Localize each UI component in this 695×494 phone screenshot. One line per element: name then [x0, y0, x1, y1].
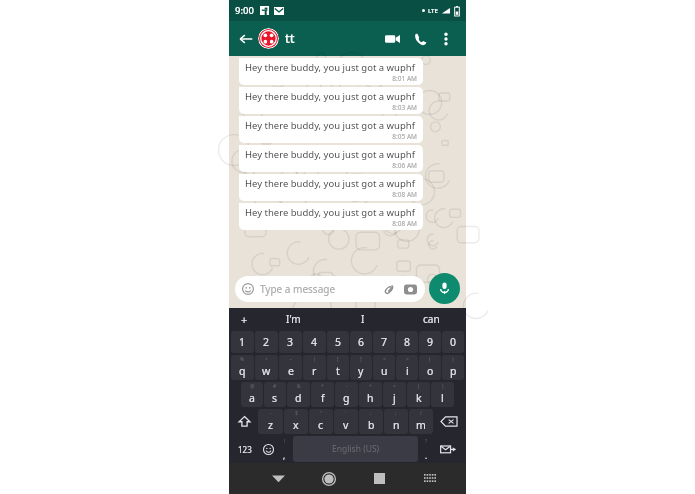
- button[interactable]: @: [241, 382, 263, 407]
- button[interactable]: Switch keyboard: [405, 463, 456, 494]
- button[interactable]: /: [409, 409, 433, 434]
- button[interactable]: Type a message: [235, 276, 425, 302]
- button[interactable]: 3: [279, 331, 302, 353]
- button[interactable]: ^: [255, 355, 278, 380]
- staticText: :: [370, 410, 372, 417]
- button[interactable]: English (US): [293, 436, 418, 462]
- staticText: 1: [239, 335, 246, 349]
- staticText: x: [293, 418, 299, 432]
- button[interactable]: Hey there buddy, you just got a wuphf: [239, 145, 423, 172]
- staticText: 6: [358, 335, 365, 349]
- button[interactable]: 6: [350, 331, 372, 353]
- staticText: u: [381, 364, 388, 378]
- button[interactable]: -: [258, 409, 283, 434]
- button[interactable]: ': [334, 409, 358, 434]
- button[interactable]: *: [311, 382, 334, 407]
- staticText: 8:08 AM: [245, 190, 417, 199]
- button[interactable]: Video call: [379, 26, 405, 52]
- staticText: |: [313, 356, 316, 363]
- button[interactable]: |: [303, 355, 326, 380]
- staticText: +: [369, 383, 372, 390]
- button[interactable]: ]: [350, 355, 372, 380]
- button[interactable]: can: [397, 308, 466, 330]
- button[interactable]: [: [327, 355, 349, 380]
- button[interactable]: Shift: [231, 409, 257, 434]
- button[interactable]: 123: [232, 436, 258, 462]
- staticText: g: [343, 391, 350, 405]
- button[interactable]: ": [309, 409, 333, 434]
- button[interactable]: <: [373, 355, 395, 380]
- staticText: 8:03 AM: [245, 103, 417, 112]
- staticText: e: [288, 364, 294, 378]
- button[interactable]: -: [335, 382, 358, 407]
- staticText: w: [262, 364, 271, 378]
- button[interactable]: I: [328, 308, 397, 330]
- staticText: can: [423, 312, 440, 326]
- button[interactable]: Backspace: [434, 409, 464, 434]
- button[interactable]: $: [284, 409, 308, 434]
- staticText: ,: [283, 450, 286, 461]
- staticText: 2: [263, 335, 270, 349]
- staticText: r: [312, 364, 317, 378]
- button[interactable]: (: [407, 382, 430, 407]
- button[interactable]: Emoji: [258, 436, 278, 462]
- staticText: ~: [289, 356, 292, 363]
- button[interactable]: Hey there buddy, you just got a wuphf: [239, 87, 423, 114]
- staticText: 0: [450, 335, 457, 349]
- button[interactable]: &: [287, 382, 310, 407]
- button[interactable]: ~: [279, 355, 302, 380]
- button[interactable]: Hey there buddy, you just got a wuphf: [239, 116, 423, 143]
- button[interactable]: =: [383, 382, 406, 407]
- button[interactable]: 8: [396, 331, 418, 353]
- button[interactable]: ;: [384, 409, 408, 434]
- staticText: LTE: [428, 7, 438, 15]
- button[interactable]: +: [359, 382, 382, 407]
- button[interactable]: Contact photo: [258, 28, 279, 49]
- button[interactable]: Back: [235, 28, 257, 50]
- button[interactable]: %: [231, 355, 254, 380]
- staticText: ?: [425, 438, 428, 445]
- staticText: 3: [287, 335, 294, 349]
- staticText: ": [320, 410, 323, 417]
- button[interactable]: 4: [303, 331, 326, 353]
- button[interactable]: More options: [434, 27, 458, 51]
- staticText: Hey there buddy, you just got a wuphf: [245, 61, 415, 74]
- staticText: ]: [360, 356, 362, 363]
- button[interactable]: ?: [420, 436, 433, 462]
- button[interactable]: Hey there buddy, you just got a wuphf: [239, 58, 423, 85]
- button[interactable]: 7: [373, 331, 395, 353]
- staticText: y: [358, 364, 364, 378]
- button[interactable]: 9: [419, 331, 441, 353]
- button[interactable]: Home: [303, 463, 354, 494]
- staticText: 8: [404, 335, 411, 349]
- staticText: l: [441, 391, 444, 405]
- staticText: -: [346, 383, 348, 390]
- button[interactable]: Attach: [381, 281, 397, 297]
- button[interactable]: Send: [433, 436, 463, 462]
- button[interactable]: 1: [231, 331, 254, 353]
- button[interactable]: Recents: [354, 463, 405, 494]
- button[interactable]: ): [442, 355, 464, 380]
- staticText: *: [321, 383, 324, 390]
- button[interactable]: 0: [442, 331, 464, 353]
- button[interactable]: I'm: [259, 308, 328, 330]
- button[interactable]: 5: [327, 331, 349, 353]
- button[interactable]: ): [431, 382, 454, 407]
- button[interactable]: Voice message: [429, 273, 460, 304]
- button[interactable]: >: [396, 355, 418, 380]
- button[interactable]: Call: [407, 26, 433, 52]
- button[interactable]: #: [264, 382, 286, 407]
- staticText: (: [418, 383, 420, 390]
- button[interactable]: 2: [255, 331, 278, 353]
- button[interactable]: :: [359, 409, 383, 434]
- staticText: q: [239, 364, 246, 378]
- staticText: >: [406, 356, 409, 363]
- button[interactable]: (: [419, 355, 441, 380]
- button[interactable]: Hey there buddy, you just got a wuphf: [239, 174, 423, 201]
- button[interactable]: Back: [253, 463, 303, 494]
- button[interactable]: Hey there buddy, you just got a wuphf: [239, 203, 423, 230]
- button[interactable]: !: [278, 436, 291, 462]
- button[interactable]: +: [229, 308, 259, 330]
- button[interactable]: Camera: [402, 281, 418, 297]
- button[interactable]: tt: [285, 30, 295, 47]
